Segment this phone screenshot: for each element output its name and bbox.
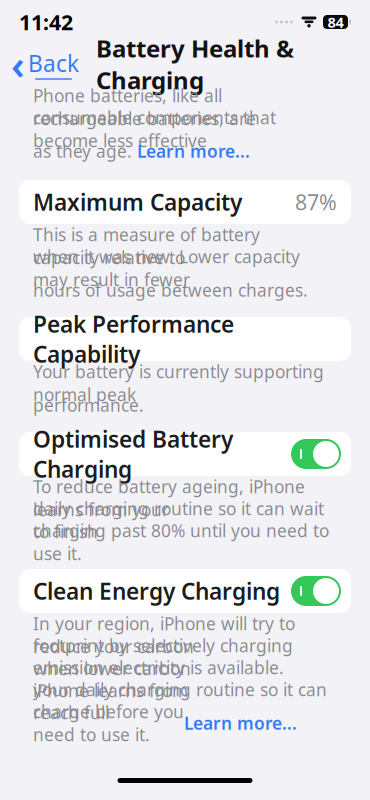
staticText: Your battery is currently supporting nor… (33, 360, 324, 406)
staticText: In your region, iPhone will try to reduc… (33, 612, 295, 658)
staticText: Back (28, 48, 79, 78)
button[interactable]: Back (12, 44, 79, 84)
button[interactable]: Maximum Capacity (19, 180, 351, 224)
staticText: To reduce battery ageing, iPhone learns … (33, 475, 305, 521)
staticText: charging past 80% until you need to use … (33, 519, 329, 565)
staticText: hours of usage between charges. (33, 278, 308, 301)
staticText: daily charging routine so it can wait to… (33, 497, 324, 543)
staticText: Learn more... (137, 139, 250, 162)
staticText: performance. (33, 393, 144, 416)
staticText: consumable components that become less e… (33, 106, 276, 152)
staticText: 11:42 (19, 8, 73, 36)
button[interactable]: Learn more... (137, 139, 250, 162)
staticText: as they age. (33, 139, 137, 162)
staticText: charge before you need to use it. (33, 700, 184, 746)
staticText: footprint by selectively charging when l… (33, 634, 293, 680)
staticText: Maximum Capacity (33, 187, 242, 217)
staticText: ‹ (11, 37, 25, 90)
staticText: Learn more... (184, 711, 297, 734)
staticText: your daily charging routine so it can re… (33, 678, 327, 724)
button[interactable]: Learn more... (184, 711, 297, 734)
staticText: emission electricity is available. iPhon… (33, 656, 284, 702)
button[interactable]: Clean Energy Charging (19, 569, 351, 613)
button[interactable]: Optimised Battery Charging (19, 432, 351, 476)
staticText: when it was new. Lower capacity may resu… (33, 245, 300, 291)
staticText: Peak Performance Capability (33, 309, 234, 369)
staticText: This is a measure of battery capacity re… (33, 223, 260, 269)
staticText: Clean Energy Charging (33, 576, 280, 606)
staticText: 87% (295, 188, 337, 216)
staticText: Phone batteries, like all rechargeable b… (33, 84, 256, 130)
button[interactable]: Peak Performance Capability (19, 317, 351, 361)
staticText: Battery Health & Charging (96, 32, 294, 96)
staticText: 84 (327, 12, 343, 32)
staticText: Optimised Battery Charging (33, 424, 233, 484)
